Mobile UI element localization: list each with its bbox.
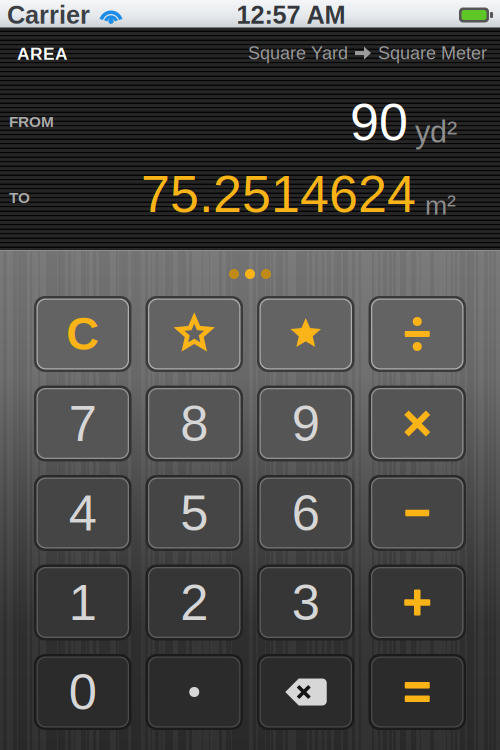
button[interactable]: 9 <box>257 385 354 461</box>
button[interactable]: Multiply <box>368 385 466 461</box>
button[interactable]: 1 <box>34 564 131 640</box>
button[interactable]: Equals <box>368 654 466 730</box>
button[interactable]: Clear <box>34 296 131 372</box>
staticText: Carrier <box>7 1 90 29</box>
staticText: yd² <box>415 115 457 149</box>
staticText: 0 <box>69 664 97 720</box>
button[interactable]: Square Yard <box>248 43 487 63</box>
staticText: 2 <box>180 574 208 631</box>
button[interactable]: 0 <box>34 654 131 730</box>
staticText: 6 <box>292 485 320 541</box>
button[interactable]: 5 <box>145 475 243 551</box>
button[interactable]: 6 <box>257 475 354 551</box>
staticText: C <box>66 309 99 359</box>
staticText: 90 <box>350 93 408 151</box>
staticText: 8 <box>180 395 208 452</box>
button[interactable]: Favourites <box>257 296 354 372</box>
button[interactable]: Add to favourites <box>145 296 243 372</box>
button[interactable]: Add <box>368 564 466 640</box>
button[interactable]: Divide <box>368 296 466 372</box>
staticText: Square Yard <box>248 43 348 63</box>
button[interactable]: 7 <box>34 385 131 461</box>
staticText: 3 <box>292 574 320 631</box>
button[interactable]: 2 <box>145 564 243 640</box>
staticText: 12:57 AM <box>236 1 345 29</box>
button[interactable]: Decimal point <box>145 654 243 730</box>
staticText: AREA <box>17 44 68 63</box>
staticText: 4 <box>69 485 97 541</box>
staticText: Square Meter <box>378 43 487 63</box>
staticText: 75.2514624 <box>141 165 416 223</box>
staticText: 7 <box>69 395 97 452</box>
staticText: 9 <box>292 395 320 452</box>
staticText: m² <box>425 190 456 220</box>
button[interactable]: Backspace <box>257 654 354 730</box>
button[interactable]: Carrier <box>7 1 123 29</box>
button[interactable]: 3 <box>257 564 354 640</box>
button[interactable]: Subtract <box>368 475 466 551</box>
button[interactable]: 4 <box>34 475 131 551</box>
staticText: 5 <box>180 485 208 541</box>
staticText: 1 <box>69 574 97 631</box>
staticText: FROM <box>9 113 54 130</box>
button[interactable]: 8 <box>145 385 243 461</box>
staticText: TO <box>9 189 30 206</box>
